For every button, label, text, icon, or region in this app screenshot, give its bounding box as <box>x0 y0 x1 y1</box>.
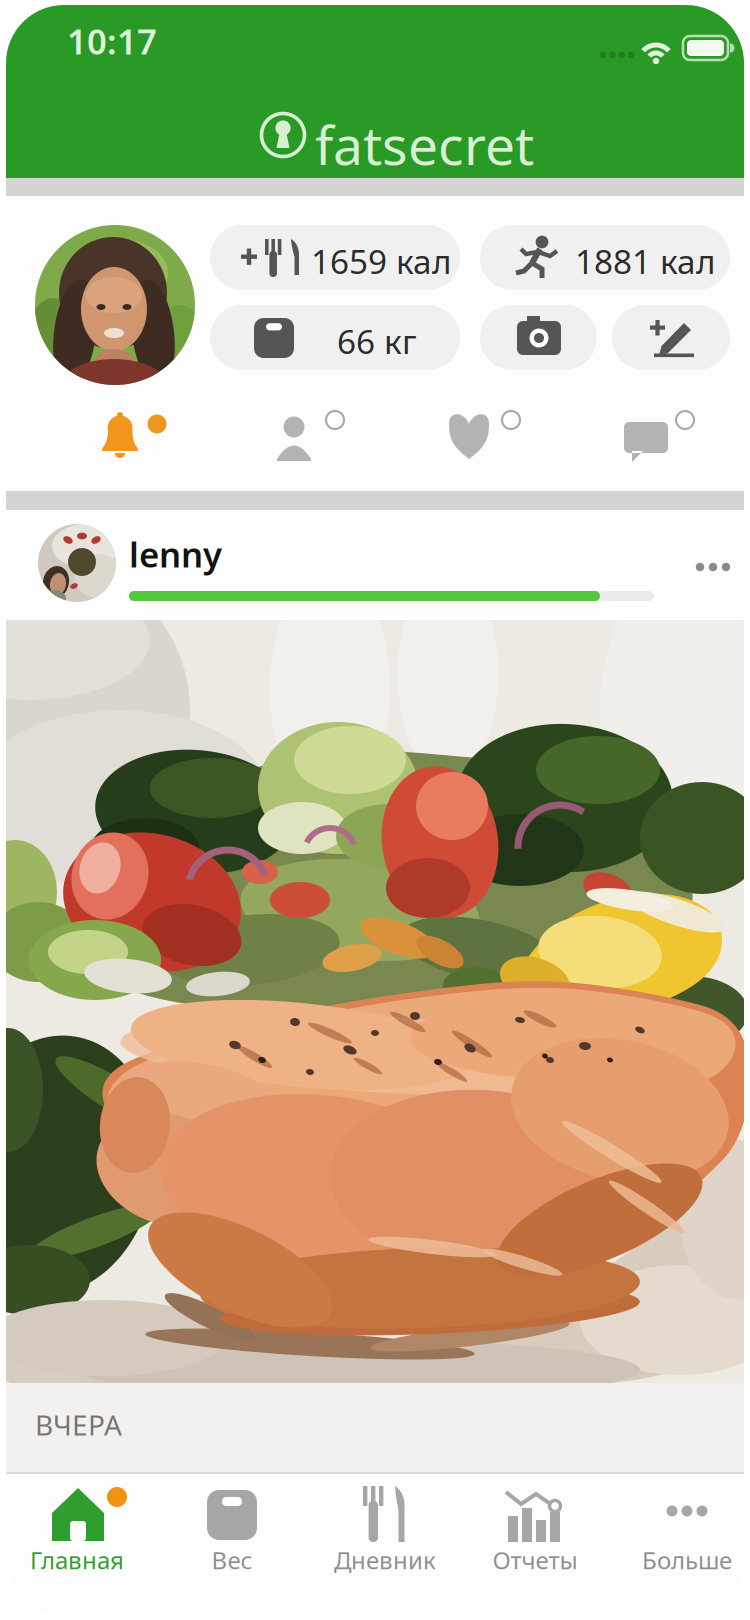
staticText: lenny <box>129 531 222 577</box>
button[interactable]: 66 кг <box>0 0 250 65</box>
button[interactable]: Еще <box>0 0 62 46</box>
staticText: Больше <box>642 1544 732 1576</box>
button[interactable]: 1881 кал <box>0 0 250 65</box>
button[interactable]: Отметки <box>0 0 100 72</box>
button[interactable]: Главная <box>0 0 150 143</box>
button[interactable]: Больше <box>0 0 150 143</box>
button[interactable]: Уведомления <box>0 0 100 72</box>
staticText: Главная <box>30 1544 124 1576</box>
button[interactable]: Дневник <box>0 0 150 143</box>
staticText: Дневник <box>334 1544 436 1576</box>
staticText: fatsecret <box>315 109 534 180</box>
staticText: 1659 кал <box>311 239 452 283</box>
button[interactable]: lenny <box>0 0 78 78</box>
staticText: 1881 кал <box>575 239 716 283</box>
button[interactable]: Подписчики <box>0 0 100 72</box>
staticText: 66 кг <box>337 319 417 363</box>
staticText: Вес <box>211 1544 252 1576</box>
button[interactable]: 1659 кал <box>0 0 250 65</box>
staticText: Отчеты <box>492 1544 577 1576</box>
button[interactable]: Записать <box>0 0 118 65</box>
button[interactable]: Отчеты <box>0 0 150 143</box>
button[interactable]: Профиль <box>0 0 160 160</box>
button[interactable]: Фото <box>0 0 117 65</box>
button[interactable]: Вес <box>0 0 150 143</box>
staticText: ВЧЕРА <box>35 1406 122 1443</box>
staticText: 10:17 <box>67 18 157 64</box>
button[interactable]: Комментарии <box>0 0 100 72</box>
